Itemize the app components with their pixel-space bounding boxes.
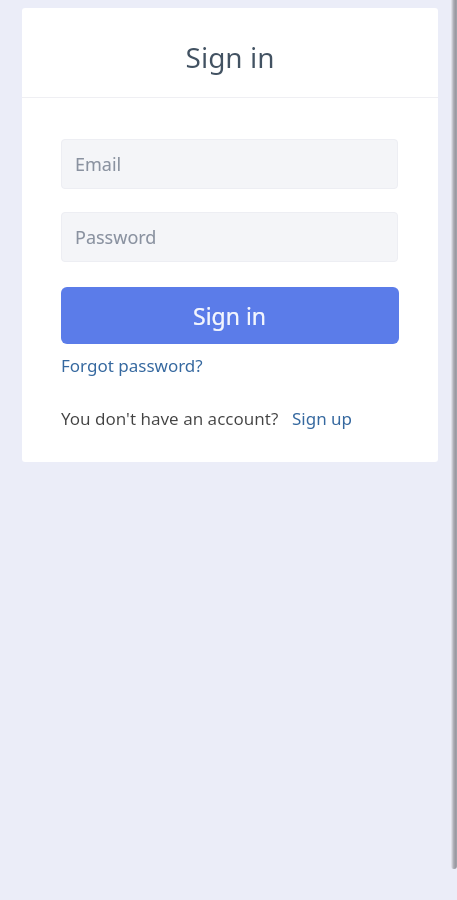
button[interactable]: Email bbox=[61, 139, 398, 189]
staticText: You don't have an account? bbox=[61, 407, 279, 430]
staticText: Sign in bbox=[193, 300, 267, 331]
button[interactable]: Sign up bbox=[292, 407, 353, 430]
staticText: Sign up bbox=[292, 407, 353, 430]
button[interactable]: Sign in bbox=[61, 287, 399, 344]
button[interactable]: Forgot password? bbox=[61, 354, 203, 377]
staticText: Forgot password? bbox=[61, 354, 203, 377]
staticText: Password bbox=[75, 225, 157, 250]
button[interactable]: Password bbox=[61, 212, 398, 262]
staticText: Email bbox=[75, 152, 122, 177]
staticText: Sign in bbox=[22, 38, 438, 76]
